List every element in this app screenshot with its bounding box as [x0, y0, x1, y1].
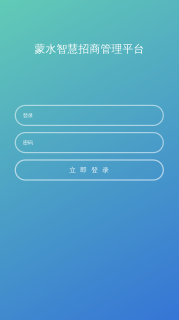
button[interactable]: 密码: [15, 133, 163, 153]
button[interactable]: 登录: [15, 105, 163, 125]
staticText: 立 即 登 录: [69, 166, 109, 174]
staticText: 密码: [23, 139, 33, 146]
staticText: 登录: [23, 112, 33, 119]
button[interactable]: 立 即 登 录: [15, 160, 163, 180]
staticText: 蒙水智慧招商管理平台: [34, 42, 144, 55]
